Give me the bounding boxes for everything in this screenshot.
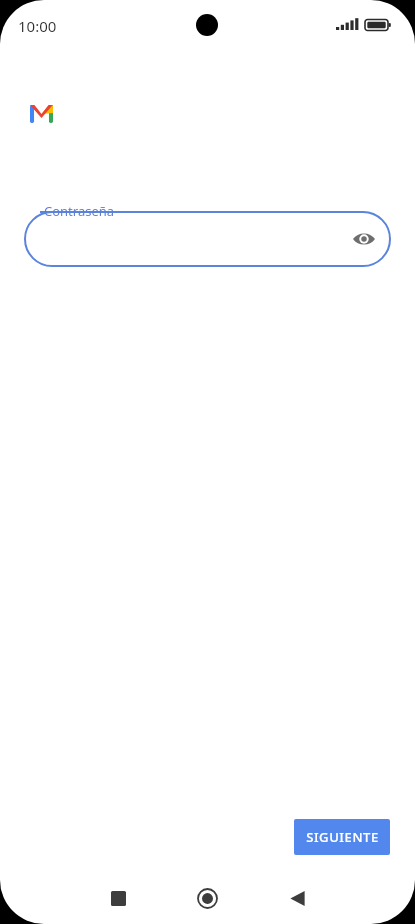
- button[interactable]: Atrás: [273, 874, 321, 922]
- button[interactable]: SIGUIENTE: [294, 819, 390, 855]
- button[interactable]: Mostrar contraseña: [349, 224, 379, 254]
- button[interactable]: Inicio: [183, 874, 231, 922]
- button[interactable]: Contraseña: [24, 211, 391, 267]
- staticText: Contraseña: [44, 202, 115, 220]
- button[interactable]: Recientes: [94, 874, 142, 922]
- staticText: 10:00: [18, 16, 57, 36]
- staticText: SIGUIENTE: [306, 828, 379, 846]
